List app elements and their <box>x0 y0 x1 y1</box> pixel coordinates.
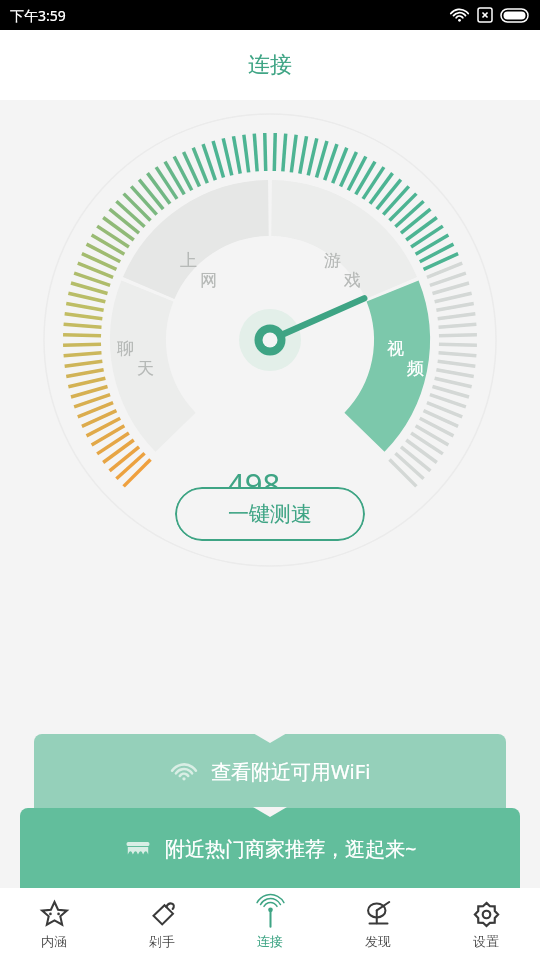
staticText: 内涵 <box>41 933 67 949</box>
button[interactable]: 剁手 <box>108 888 216 960</box>
button[interactable]: 设置 <box>432 888 540 960</box>
staticText: 上 <box>180 250 197 271</box>
staticText: 连接 <box>248 51 292 79</box>
staticText: 剁手 <box>149 933 175 949</box>
staticText: 视 <box>387 338 404 359</box>
staticText: 聊 <box>117 338 134 359</box>
button[interactable]: 发现 <box>324 888 432 960</box>
staticText: 网 <box>200 270 217 291</box>
staticText: 发现 <box>365 933 391 949</box>
staticText: 查看附近可用WiFi <box>211 758 371 785</box>
staticText: 戏 <box>344 270 361 291</box>
staticText: 附近热门商家推荐，逛起来~ <box>165 835 417 862</box>
staticText: KB/s <box>281 482 313 502</box>
staticText: 设置 <box>473 933 499 949</box>
staticText: 频 <box>407 358 424 379</box>
button[interactable]: 一键测速 <box>175 487 365 541</box>
staticText: 天 <box>137 358 154 379</box>
button[interactable]: 附近热门商家推荐，逛起来~ <box>20 808 520 888</box>
staticText: 一键测速 <box>228 501 312 527</box>
staticText: 498 <box>227 463 281 505</box>
staticText: 连接 <box>257 933 283 949</box>
staticText: 游 <box>324 250 341 271</box>
button[interactable]: 连接 <box>216 888 324 960</box>
button[interactable]: 查看附近可用WiFi <box>34 734 506 808</box>
staticText: 下午3:59 <box>10 6 66 25</box>
button[interactable]: 内涵 <box>0 888 108 960</box>
